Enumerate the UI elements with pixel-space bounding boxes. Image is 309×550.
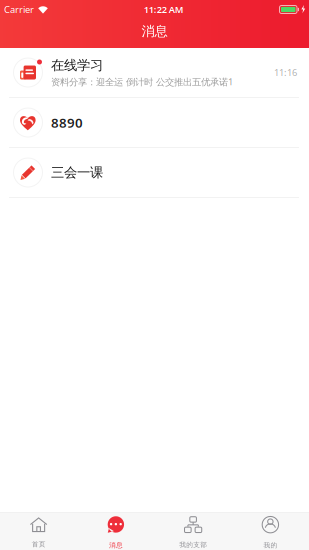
staticText: 三会一课 bbox=[51, 164, 103, 181]
button[interactable]: 三会一课 bbox=[0, 148, 309, 198]
staticText: 我的 bbox=[263, 541, 277, 549]
staticText: 消息 bbox=[109, 541, 123, 549]
staticText: 11:16 bbox=[274, 66, 297, 79]
button[interactable]: 消息 bbox=[77, 512, 154, 550]
staticText: 8890 bbox=[51, 114, 83, 131]
staticText: Carrier bbox=[4, 3, 34, 16]
button[interactable]: 我的 bbox=[232, 512, 309, 550]
button[interactable]: 在线学习 bbox=[0, 48, 309, 98]
staticText: 消息 bbox=[141, 23, 167, 39]
staticText: 在线学习 bbox=[51, 57, 103, 73]
button[interactable]: 8890 bbox=[0, 98, 309, 148]
button[interactable]: 首页 bbox=[0, 512, 77, 550]
staticText: 11:22 AM bbox=[144, 3, 184, 16]
button[interactable]: 我的支部 bbox=[154, 512, 232, 550]
staticText: 首页 bbox=[32, 540, 46, 548]
staticText: 我的支部 bbox=[179, 541, 207, 549]
staticText: 资料分享：迎全运 倒计时 公交推出五优承诺1 bbox=[51, 75, 233, 88]
